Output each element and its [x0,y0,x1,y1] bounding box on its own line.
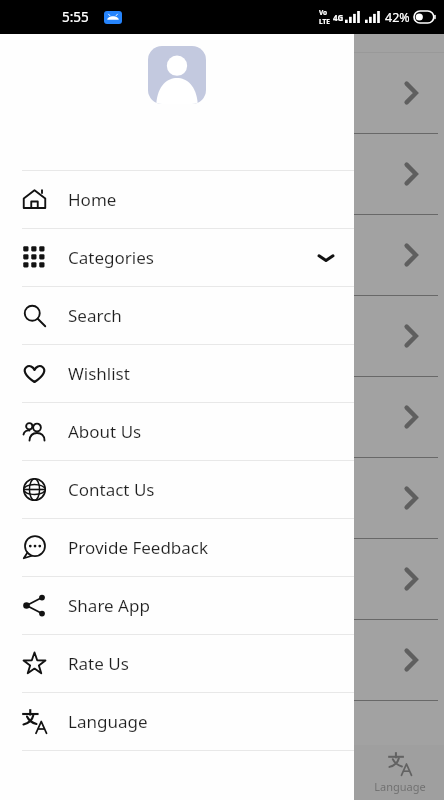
button[interactable]: Provide Feedback [0,519,354,576]
staticText: LTE [319,17,330,26]
button[interactable]: Categories [0,229,354,286]
button[interactable]: About Us [0,403,354,460]
button[interactable]: Share App [0,577,354,634]
staticText: 4G [333,12,344,23]
button[interactable]: Rate Us [0,635,354,692]
staticText: 42% [385,9,410,26]
staticText: Language [68,710,148,733]
staticText: 5:55 [62,8,89,26]
button[interactable] [0,134,444,214]
staticText: Share App [68,594,150,617]
button[interactable]: Language [355,745,444,800]
staticText: Vo [319,8,328,17]
staticText: Categories [68,246,154,269]
button[interactable]: Search [0,287,354,344]
button[interactable] [0,458,444,538]
staticText: Search [68,304,122,327]
button[interactable]: Wishlist [0,345,354,402]
button[interactable] [0,53,444,133]
button[interactable]: Contact Us [0,461,354,518]
staticText: Language [374,779,426,794]
button[interactable] [0,296,444,376]
button[interactable] [0,215,444,295]
staticText: Wishlist [68,362,130,385]
button[interactable] [0,377,444,457]
staticText: Rate Us [68,652,129,675]
button[interactable] [0,620,444,700]
button[interactable] [0,539,444,619]
button[interactable]: Language [0,693,354,750]
staticText: Home [68,188,117,211]
button[interactable] [266,745,355,800]
button[interactable]: Profile photo [148,46,206,104]
staticText: Provide Feedback [68,536,209,559]
staticText: Contact Us [68,478,155,501]
staticText: About Us [68,420,142,443]
button[interactable]: Home [0,171,354,228]
